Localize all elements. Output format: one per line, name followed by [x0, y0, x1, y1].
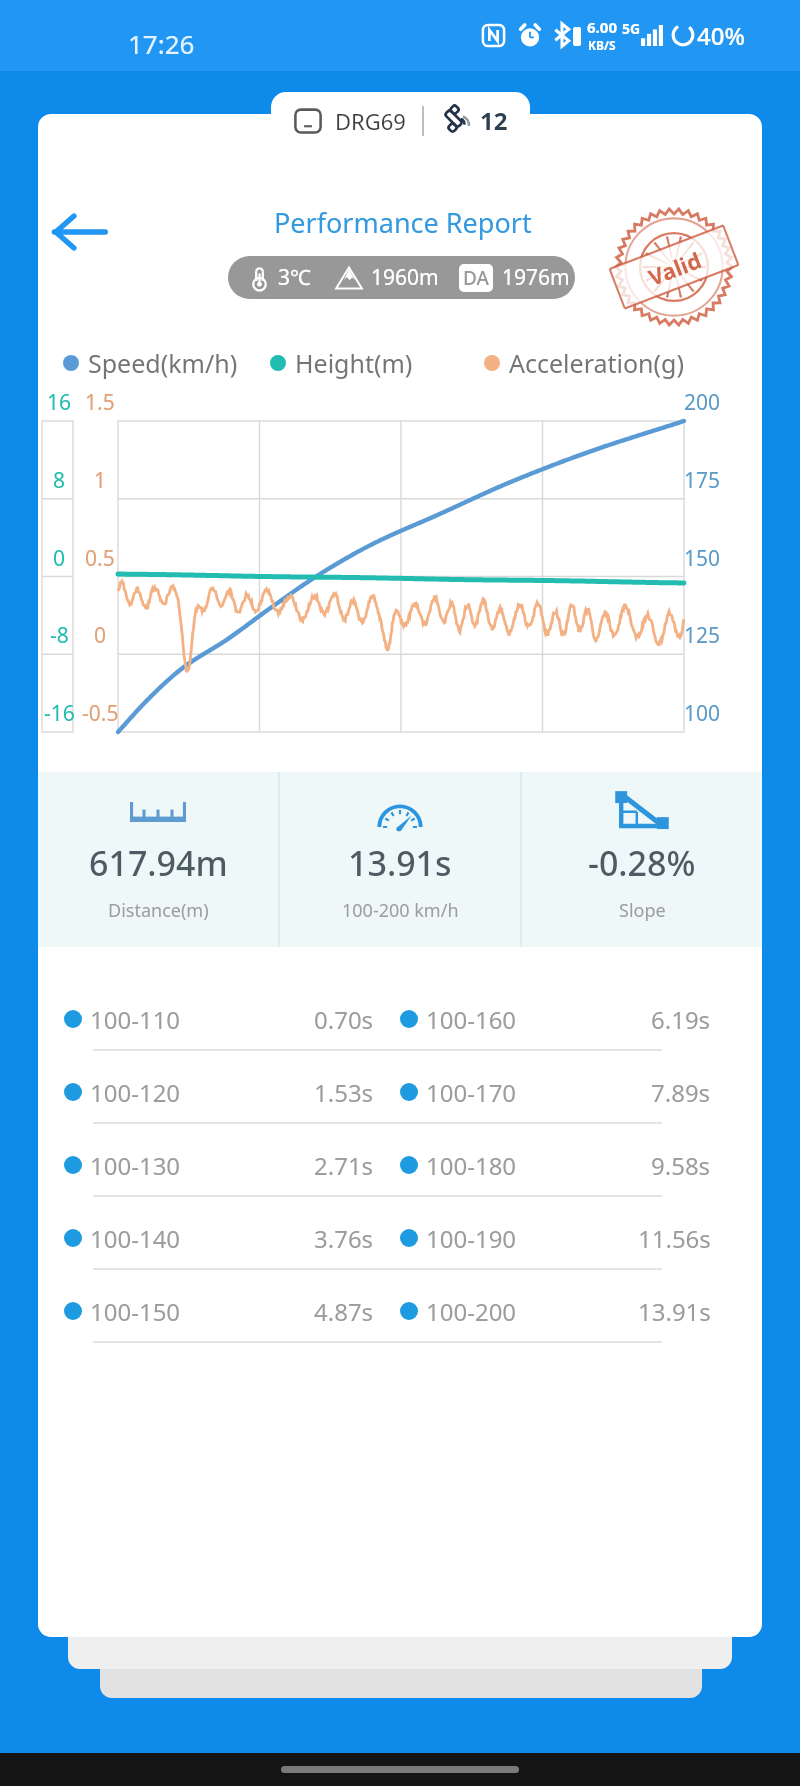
staticText: 3.76s	[314, 1222, 374, 1255]
staticText: KB/S	[588, 37, 616, 53]
staticText: 100-160	[426, 1003, 517, 1036]
button[interactable]: -0.28%	[522, 772, 762, 947]
staticText: Speed(km/h)	[88, 346, 238, 380]
button[interactable]: Height(m)	[270, 346, 413, 380]
staticText: 200	[684, 388, 721, 416]
staticText: 100	[684, 699, 721, 727]
staticText: 100-200	[426, 1295, 517, 1328]
button[interactable]: 13.91s	[280, 772, 520, 947]
staticText: 0.5	[85, 544, 115, 572]
staticText: 100-120	[90, 1076, 181, 1109]
button[interactable]: DRG69	[271, 92, 530, 148]
staticText: 100-150	[90, 1295, 181, 1328]
staticText: 1976m	[502, 263, 570, 292]
button[interactable]: 100-110	[38, 990, 400, 1048]
button[interactable]: Speed(km/h)	[63, 346, 238, 380]
staticText: -0.28%	[588, 840, 696, 886]
staticText: 1960m	[371, 263, 439, 292]
staticText: 6.00	[587, 17, 617, 37]
staticText: 13.91s	[638, 1295, 711, 1328]
staticText: Height(m)	[295, 346, 413, 380]
staticText: 8	[53, 466, 66, 494]
staticText: 1	[94, 466, 107, 494]
button[interactable]: 100-190	[400, 1209, 762, 1267]
staticText: -0.5	[82, 699, 119, 727]
button[interactable]: 100-120	[38, 1063, 400, 1121]
staticText: Slope	[619, 898, 666, 923]
staticText: 100-140	[90, 1222, 181, 1255]
staticText: 5G	[622, 19, 641, 38]
staticText: Valid	[644, 244, 706, 292]
staticText: 6.19s	[651, 1003, 711, 1036]
staticText: 100-170	[426, 1076, 517, 1109]
staticText: 175	[684, 466, 721, 494]
staticText: 0	[94, 621, 107, 649]
staticText: 1.5	[85, 388, 115, 416]
button[interactable]: Acceleration(g)	[484, 346, 684, 380]
staticText: 125	[684, 621, 721, 649]
button[interactable]: Back	[47, 200, 111, 264]
button[interactable]: 100-150	[38, 1282, 400, 1340]
staticText: 100-180	[426, 1149, 517, 1182]
staticText: 0.70s	[314, 1003, 374, 1036]
staticText: 12	[480, 104, 508, 137]
button[interactable]: 3℃	[228, 256, 575, 299]
button[interactable]: 100-130	[38, 1136, 400, 1194]
staticText: Distance(m)	[108, 898, 209, 923]
staticText: 11.56s	[638, 1222, 711, 1255]
staticText: Acceleration(g)	[509, 346, 684, 380]
staticText: 2.71s	[314, 1149, 374, 1182]
staticText: 17:26	[128, 26, 195, 61]
staticText: 4.87s	[314, 1295, 374, 1328]
staticText: 16	[47, 388, 72, 416]
button[interactable]: 100-160	[400, 990, 762, 1048]
staticText: 100-200 km/h	[342, 898, 459, 923]
button[interactable]: 617.94m	[38, 772, 278, 947]
staticText: 13.91s	[348, 840, 452, 886]
staticText: DRG69	[335, 106, 406, 136]
staticText: 1.53s	[314, 1076, 374, 1109]
staticText: 617.94m	[89, 840, 228, 886]
staticText: DA	[463, 265, 489, 291]
button[interactable]: 100-200	[400, 1282, 762, 1340]
button[interactable]: 100-180	[400, 1136, 762, 1194]
staticText: 40%	[697, 19, 745, 52]
button[interactable]: 100-170	[400, 1063, 762, 1121]
staticText: 9.58s	[651, 1149, 711, 1182]
staticText: 0	[53, 544, 66, 572]
staticText: Performance Report	[274, 204, 532, 241]
staticText: 100-110	[90, 1003, 181, 1036]
staticText: 100-190	[426, 1222, 517, 1255]
staticText: 150	[684, 544, 721, 572]
staticText: -16	[44, 699, 75, 727]
staticText: 3℃	[278, 263, 311, 292]
staticText: -8	[50, 621, 69, 649]
staticText: 7.89s	[651, 1076, 711, 1109]
staticText: 100-130	[90, 1149, 181, 1182]
button[interactable]: 100-140	[38, 1209, 400, 1267]
